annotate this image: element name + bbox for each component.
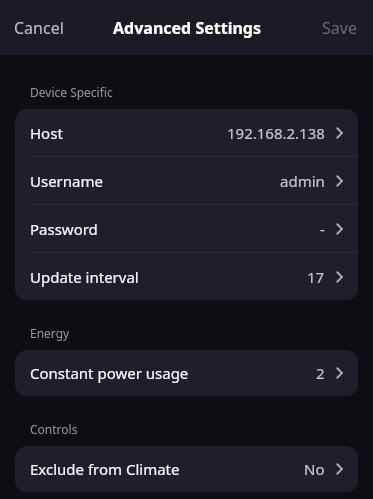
staticText: 17 — [307, 267, 325, 287]
staticText: Update interval — [30, 267, 139, 287]
staticText: Save — [322, 17, 357, 39]
button[interactable]: Update interval — [15, 253, 358, 300]
staticText: Advanced Settings — [113, 17, 261, 39]
staticText: 2 — [316, 363, 325, 383]
staticText: Energy — [30, 325, 70, 341]
staticText: Controls — [30, 421, 78, 437]
staticText: No — [304, 459, 325, 479]
button[interactable]: Password — [15, 205, 358, 252]
staticText: Password — [30, 219, 98, 239]
staticText: Cancel — [14, 17, 64, 39]
button[interactable]: Exclude from Climate — [15, 446, 358, 492]
button[interactable]: Host — [15, 109, 358, 156]
button[interactable]: Username — [15, 157, 358, 204]
staticText: Exclude from Climate — [30, 459, 180, 479]
staticText: admin — [280, 171, 325, 191]
staticText: Constant power usage — [30, 363, 189, 383]
staticText: Device Specific — [30, 84, 113, 100]
button[interactable]: Cancel — [0, 6, 78, 50]
staticText: 192.168.2.138 — [227, 123, 325, 143]
button[interactable]: Constant power usage — [15, 350, 358, 396]
staticText: Host — [30, 123, 63, 143]
staticText: - — [320, 219, 325, 239]
staticText: Username — [30, 171, 103, 191]
button[interactable]: Save — [306, 6, 373, 50]
